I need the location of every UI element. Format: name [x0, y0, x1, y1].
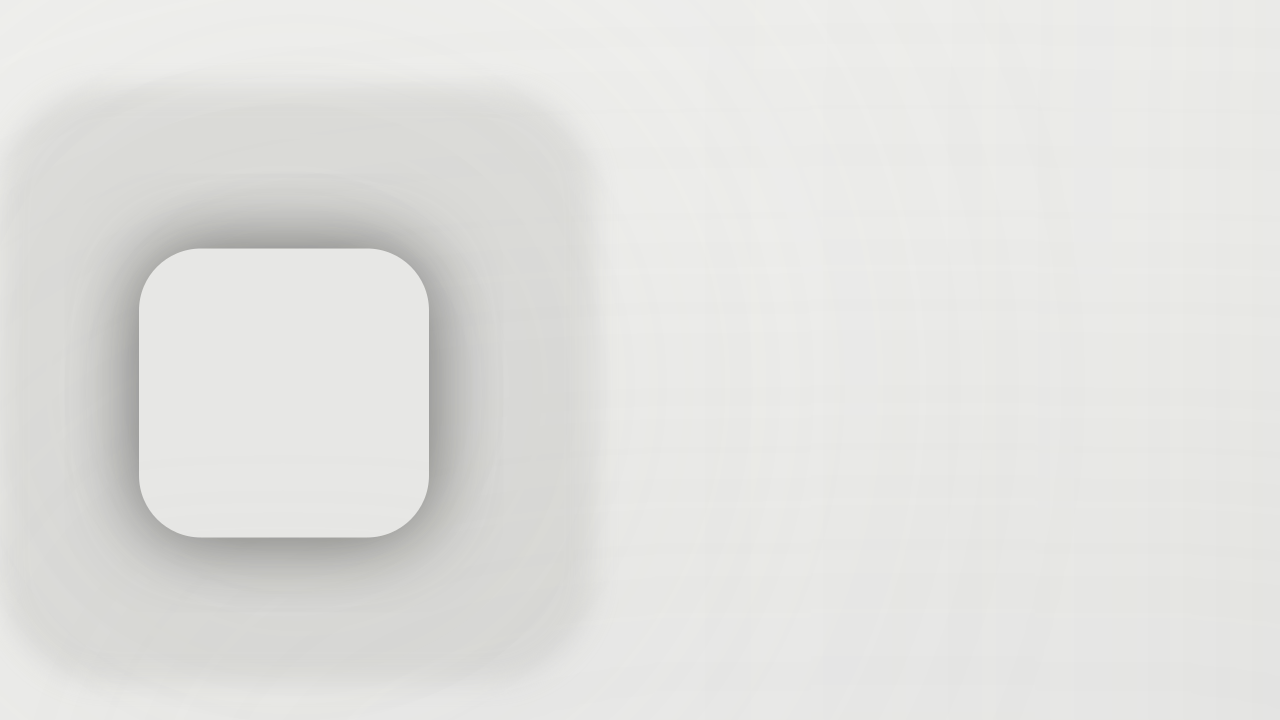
button[interactable]: App tile: [139, 248, 429, 537]
